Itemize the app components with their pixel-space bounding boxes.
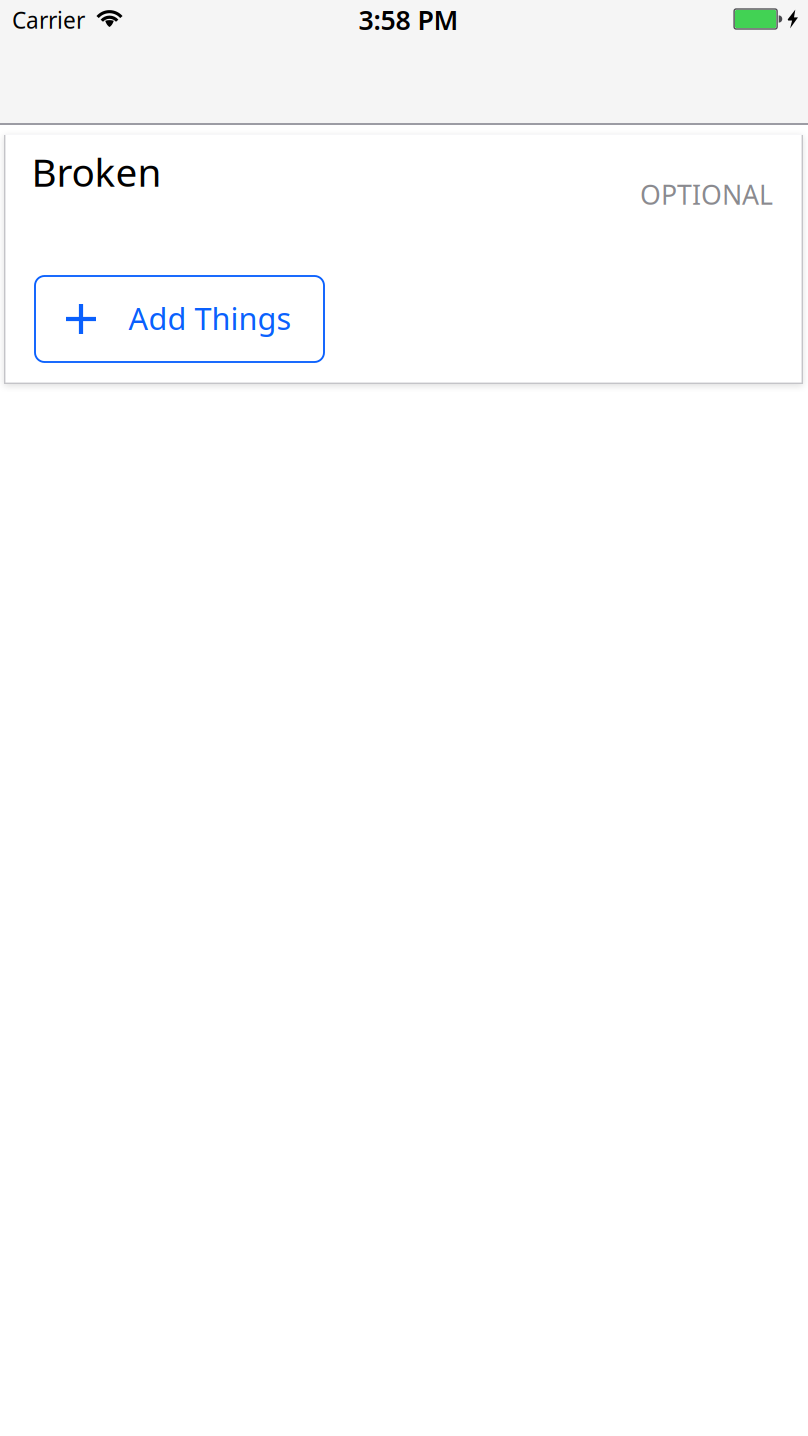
staticText: Broken [32,146,162,197]
staticText: 3:58 PM [358,2,458,37]
button[interactable]: Add Things [35,276,324,362]
staticText: Add Things [128,298,291,338]
staticText: Carrier [12,5,85,35]
staticText: OPTIONAL [640,177,773,212]
